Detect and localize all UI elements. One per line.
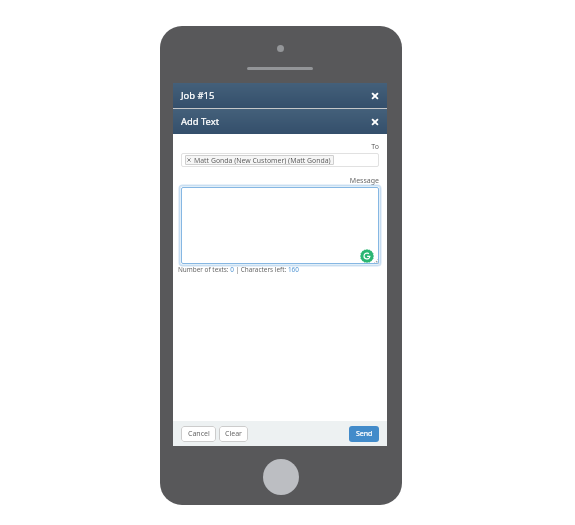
staticText: Message	[173, 176, 379, 186]
button[interactable]: Send	[349, 426, 379, 442]
button[interactable]: Grammarly	[360, 249, 374, 263]
button[interactable]: Cancel	[181, 426, 216, 442]
button[interactable]: Matt Gonda (New Customer) (Matt Gonda)	[185, 155, 334, 165]
button[interactable]: Close	[369, 116, 381, 128]
staticText: Number of texts: 0 | Characters left: 16…	[178, 265, 299, 274]
button[interactable]: Clear	[219, 426, 248, 442]
staticText: Matt Gonda (New Customer) (Matt Gonda)	[194, 156, 331, 165]
staticText: Clear	[225, 429, 242, 439]
staticText: Add Text	[181, 115, 220, 128]
staticText: Cancel	[188, 429, 210, 439]
staticText: Job #15	[181, 89, 215, 102]
staticText: Send	[356, 429, 373, 439]
staticText: To	[173, 142, 379, 152]
button[interactable]: Close	[369, 90, 381, 102]
